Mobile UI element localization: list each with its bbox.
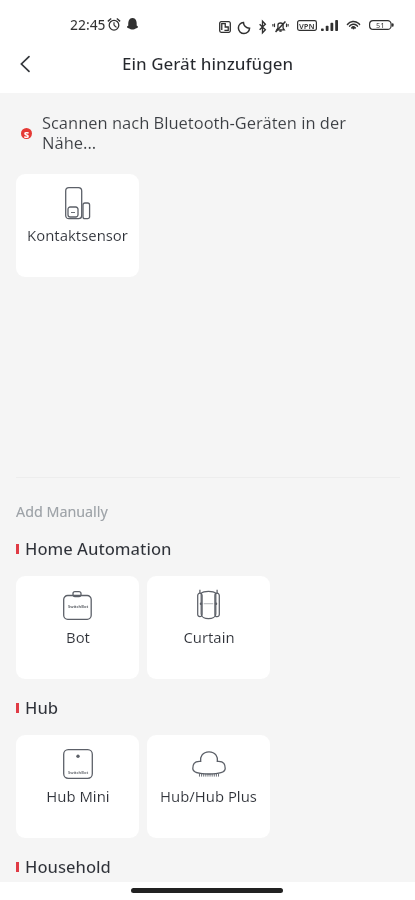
staticText: 51 <box>376 20 385 30</box>
button[interactable]: Back <box>5 44 45 84</box>
button[interactable]: Kontaktsensor <box>16 174 139 277</box>
staticText: Scannen nach Bluetooth-Geräten in der Nä… <box>42 111 362 154</box>
staticText: Ein Gerät hinzufügen <box>122 52 294 75</box>
staticText: Curtain <box>183 627 235 647</box>
staticText: Home Automation <box>25 537 172 560</box>
staticText: VPN <box>299 21 315 31</box>
staticText: Hub Mini <box>46 786 110 806</box>
button[interactable]: Hub/Hub Plus <box>147 735 270 838</box>
staticText: SwitchBot <box>68 604 89 609</box>
staticText: Hub <box>25 696 59 719</box>
staticText: S <box>24 128 29 139</box>
staticText: Kontaktsensor <box>27 225 128 245</box>
button[interactable]: Curtain <box>147 576 270 679</box>
staticText: Bot <box>66 627 90 647</box>
button[interactable]: SwitchBot <box>16 735 139 838</box>
button[interactable]: SwitchBot <box>16 576 139 679</box>
staticText: Household <box>25 855 111 878</box>
staticText: Hub/Hub Plus <box>160 786 257 806</box>
staticText: Add Manually <box>16 502 108 521</box>
staticText: SwitchBot <box>68 770 89 775</box>
staticText: 22:45 <box>70 15 106 34</box>
